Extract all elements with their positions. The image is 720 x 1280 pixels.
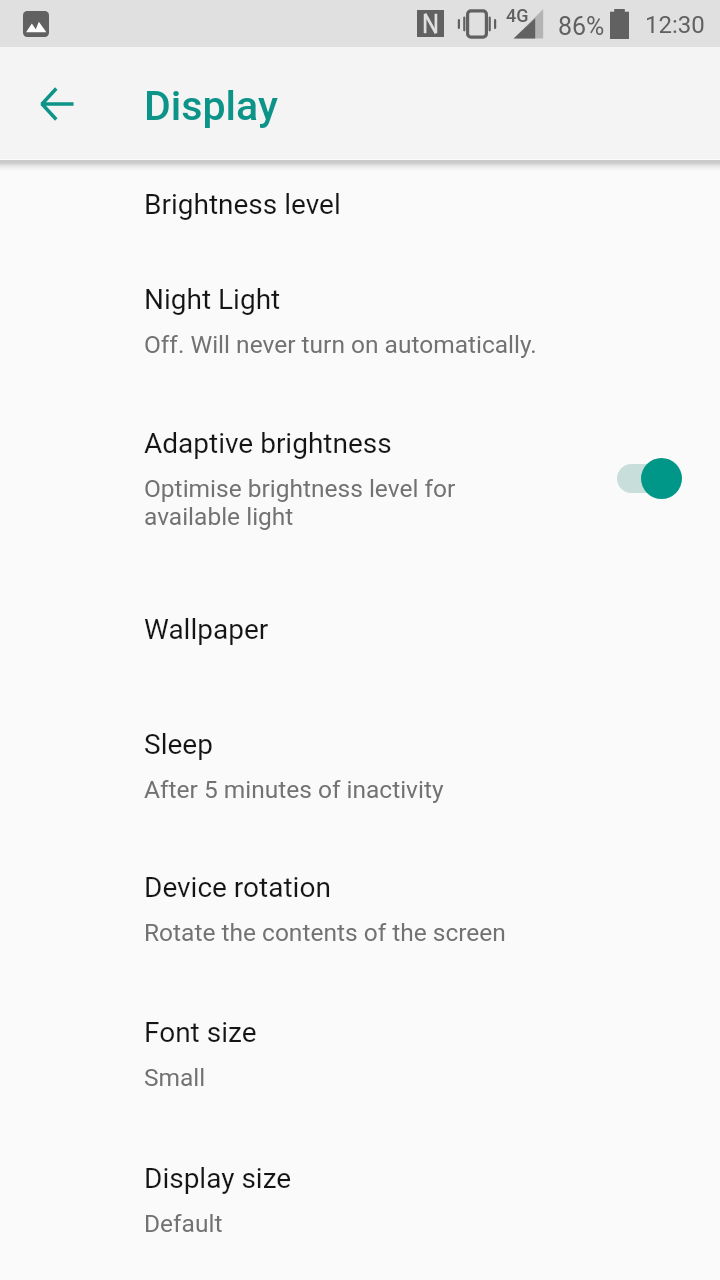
staticText: 12:30 xyxy=(645,11,705,39)
button[interactable]: Sleep xyxy=(0,702,720,822)
button[interactable]: Adaptive brightness xyxy=(0,401,720,549)
button[interactable]: Display size xyxy=(0,1136,720,1256)
staticText: 86% xyxy=(558,12,605,41)
staticText: Small xyxy=(144,1063,206,1092)
staticText: Font size xyxy=(144,1016,257,1049)
button[interactable]: Device rotation xyxy=(0,845,720,965)
staticText: Sleep xyxy=(144,728,213,761)
staticText: Night Light xyxy=(144,283,281,316)
staticText: Wallpaper xyxy=(144,613,269,646)
staticText: Rotate the contents of the screen xyxy=(144,918,506,947)
staticText: Display xyxy=(144,82,278,130)
staticText: Brightness level xyxy=(144,188,341,221)
staticText: After 5 minutes of inactivity xyxy=(144,775,444,804)
button[interactable]: Navigate up xyxy=(21,68,93,140)
staticText: Optimise brightness level for available … xyxy=(144,474,456,531)
button[interactable]: Wallpaper xyxy=(0,587,720,677)
staticText: Off. Will never turn on automatically. xyxy=(144,330,537,359)
staticText: Default xyxy=(144,1209,223,1238)
button[interactable]: Night Light xyxy=(0,257,720,377)
button[interactable]: Adaptive brightness, on xyxy=(598,442,694,514)
button[interactable]: Font size xyxy=(0,990,720,1110)
staticText: Adaptive brightness xyxy=(144,427,392,460)
staticText: Device rotation xyxy=(144,871,331,904)
staticText: Display size xyxy=(144,1162,292,1195)
staticText: 4G xyxy=(506,5,529,26)
button[interactable]: Brightness level xyxy=(0,162,720,252)
